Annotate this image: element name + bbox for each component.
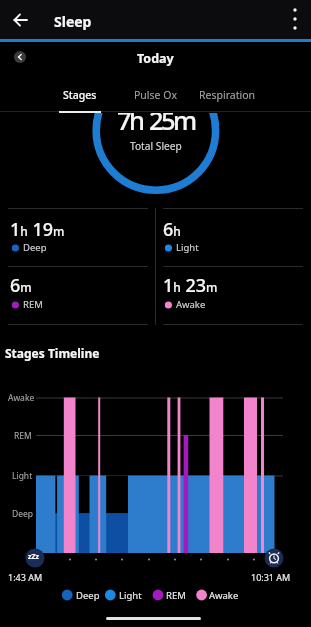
staticText: 1:43 AM [8,571,43,583]
staticText: Stages Timeline [5,345,100,361]
staticText: Pulse Ox [134,88,177,102]
button[interactable]: Pulse Ox [124,79,187,110]
staticText: Deep [76,589,100,602]
staticText: REM [23,298,43,311]
staticText: zZz [28,552,39,562]
staticText: REM [166,589,186,602]
staticText: 1h 23m [163,273,218,298]
staticText: Today [137,50,174,67]
staticText: Awake [209,589,239,602]
staticText: Light [12,470,33,482]
staticText: Deep [23,241,47,254]
staticText: Awake [176,298,206,311]
staticText: Respiration [199,88,256,102]
staticText: Light [119,589,142,602]
staticText: 10:31 AM [251,571,291,583]
staticText: Light [176,241,199,254]
staticText: 1h 19m [10,217,65,242]
staticText: Total Sleep [130,139,182,153]
staticText: Sleep [54,12,92,31]
button[interactable]: Respiration [192,79,262,110]
staticText: 6m [10,273,32,298]
staticText: Awake [8,392,35,404]
button[interactable] [14,51,26,63]
staticText: REM [14,430,32,442]
staticText: Stages [63,88,97,102]
staticText: 6h [163,217,181,242]
button[interactable] [4,4,36,36]
staticText: 7h 25m [117,113,195,138]
button[interactable]: Stages [50,79,110,110]
button[interactable] [280,4,310,34]
staticText: Deep [12,508,34,520]
